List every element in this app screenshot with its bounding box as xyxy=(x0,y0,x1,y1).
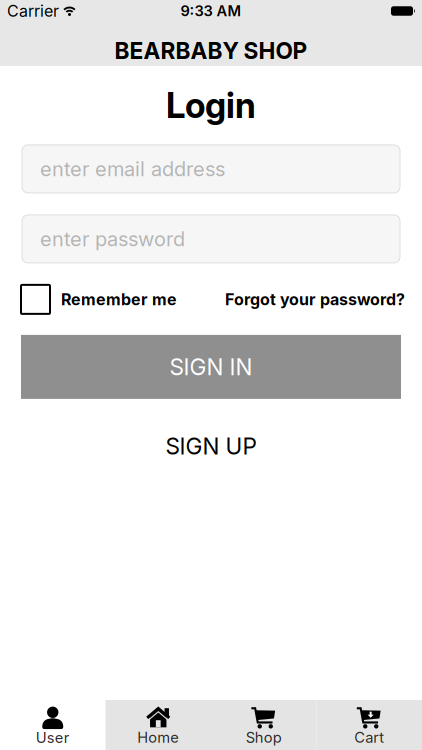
staticText: Login xyxy=(166,85,256,126)
button[interactable]: User xyxy=(0,700,105,750)
button[interactable]: Home xyxy=(105,700,211,750)
staticText: SIGN UP xyxy=(165,433,256,460)
button[interactable]: Shop xyxy=(211,700,316,750)
staticText: 9:33 AM xyxy=(180,2,241,20)
button[interactable]: enter email address xyxy=(22,145,400,193)
staticText: Cart xyxy=(354,729,384,746)
staticText: enter password xyxy=(40,227,185,251)
button[interactable]: SIGN UP xyxy=(165,433,256,460)
staticText: User xyxy=(36,729,70,746)
staticText: Home xyxy=(137,729,179,746)
staticText: Remember me xyxy=(61,290,177,309)
button[interactable]: SIGN IN xyxy=(21,335,401,399)
staticText: Forgot your password? xyxy=(225,290,405,309)
staticText: Carrier xyxy=(7,2,59,20)
button[interactable]: enter password xyxy=(22,215,400,263)
staticText: enter email address xyxy=(40,157,225,181)
staticText: Shop xyxy=(246,729,282,746)
button[interactable]: Forgot your password? xyxy=(225,290,405,309)
button[interactable]: Remember me xyxy=(21,285,177,314)
staticText: SIGN IN xyxy=(169,353,252,380)
button[interactable]: Cart xyxy=(316,700,422,750)
staticText: BEARBABY SHOP xyxy=(114,37,307,64)
